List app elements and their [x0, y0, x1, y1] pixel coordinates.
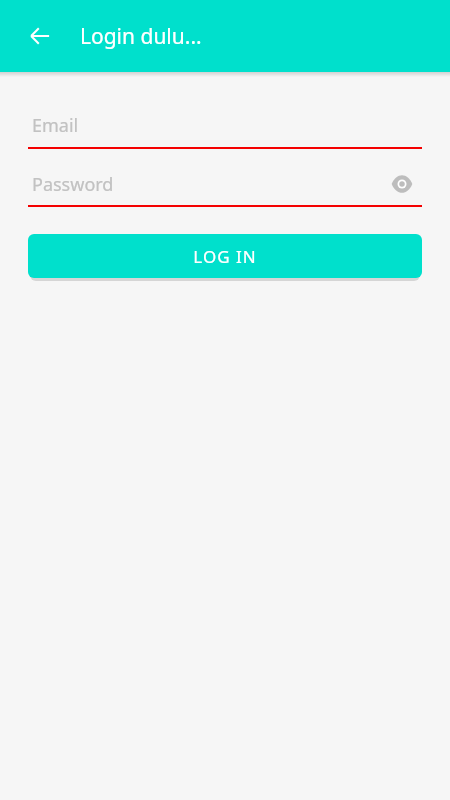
staticText: LOG IN [193, 245, 257, 268]
staticText: Email [32, 113, 79, 138]
button[interactable]: LOG IN [28, 234, 422, 278]
button[interactable]: Show password [382, 164, 422, 204]
button[interactable]: Password [28, 163, 422, 205]
staticText: Login dulu... [80, 22, 202, 51]
button[interactable]: Back [16, 12, 64, 60]
staticText: Password [32, 172, 114, 197]
button[interactable]: Email [28, 103, 422, 147]
